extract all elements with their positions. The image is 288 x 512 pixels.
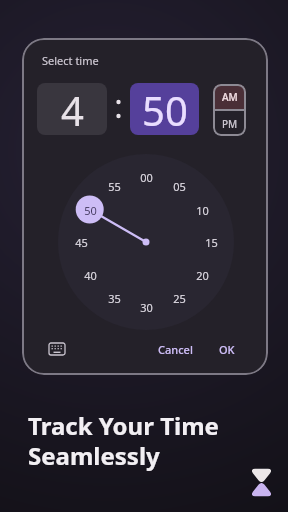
staticText: 45 bbox=[75, 235, 88, 250]
button[interactable]: 50 bbox=[130, 83, 199, 135]
button[interactable]: 40 bbox=[76, 266, 104, 284]
button[interactable]: Cancel bbox=[150, 336, 200, 362]
button[interactable]: 4 bbox=[37, 83, 107, 135]
button[interactable]: OK bbox=[208, 336, 246, 362]
staticText: 55 bbox=[108, 179, 121, 194]
staticText: 20 bbox=[196, 268, 209, 283]
button[interactable] bbox=[44, 338, 70, 360]
button[interactable]: 20 bbox=[188, 266, 216, 284]
button[interactable]: 25 bbox=[165, 289, 193, 307]
staticText: Select time bbox=[42, 53, 99, 68]
button[interactable]: 10 bbox=[188, 201, 216, 219]
staticText: Track Your Time Seamlessly bbox=[28, 409, 219, 472]
button[interactable]: 45 bbox=[67, 233, 95, 251]
staticText: 40 bbox=[84, 268, 97, 283]
staticText: 30 bbox=[140, 300, 153, 315]
staticText: 00 bbox=[140, 170, 153, 185]
staticText: 50 bbox=[142, 83, 188, 135]
staticText: OK bbox=[219, 342, 235, 357]
button[interactable]: 05 bbox=[165, 177, 193, 195]
button[interactable]: 50 bbox=[76, 201, 104, 219]
staticText: 4 bbox=[61, 83, 84, 135]
button[interactable]: 15 bbox=[197, 233, 225, 251]
staticText: 50 bbox=[84, 203, 97, 218]
button[interactable]: 00 bbox=[132, 168, 160, 186]
staticText: 25 bbox=[173, 291, 186, 306]
staticText: AM bbox=[222, 90, 238, 104]
staticText: 15 bbox=[205, 235, 218, 250]
staticText: PM bbox=[222, 117, 238, 131]
button[interactable]: AM bbox=[213, 84, 246, 109]
staticText: 05 bbox=[173, 179, 186, 194]
staticText: 35 bbox=[108, 291, 121, 306]
button[interactable]: PM bbox=[213, 111, 246, 136]
button[interactable]: 35 bbox=[100, 289, 128, 307]
button[interactable]: 30 bbox=[132, 298, 160, 316]
staticText: Cancel bbox=[158, 342, 193, 357]
staticText: 10 bbox=[196, 203, 209, 218]
button[interactable]: 55 bbox=[100, 177, 128, 195]
